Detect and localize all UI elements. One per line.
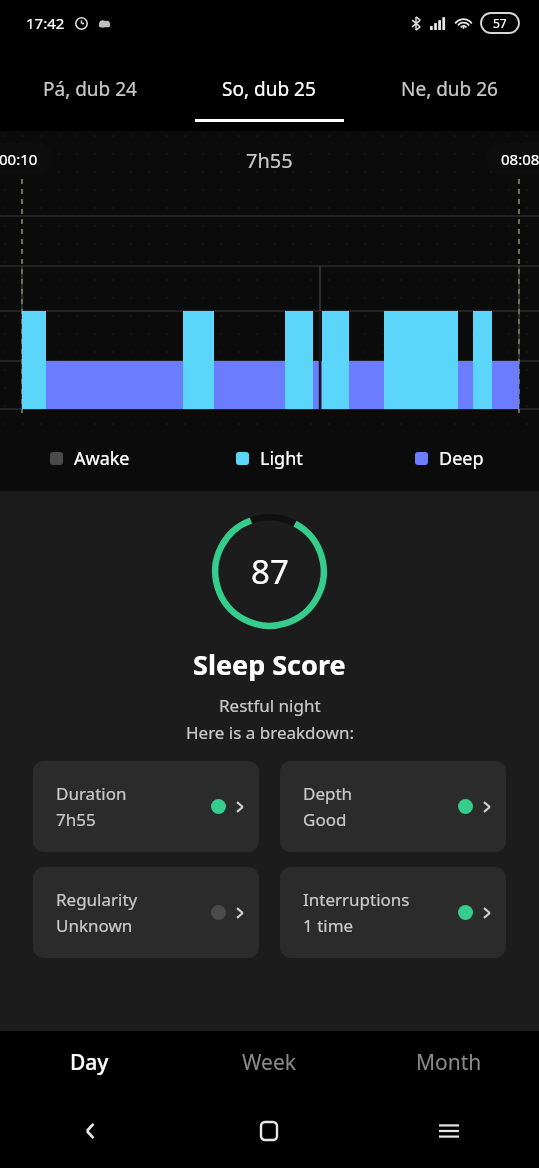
staticText: Deep: [439, 446, 484, 471]
staticText: So, dub 25: [222, 76, 316, 102]
staticText: Restful night: [219, 694, 321, 717]
staticText: Good: [303, 808, 347, 831]
staticText: Day: [70, 1048, 109, 1077]
staticText: Here is a breakdown:: [186, 721, 354, 744]
staticText: Regularity: [56, 888, 138, 911]
button[interactable]: Back: [0, 1094, 179, 1168]
staticText: 87: [251, 549, 289, 594]
button[interactable]: Day: [0, 1031, 179, 1094]
button[interactable]: Month: [359, 1031, 539, 1094]
staticText: 1 time: [303, 914, 354, 937]
button[interactable]: So, dub 25: [179, 46, 359, 131]
staticText: 00:10: [0, 149, 38, 169]
button[interactable]: Duration: [33, 761, 259, 852]
button[interactable]: Week: [179, 1031, 359, 1094]
button[interactable]: Regularity: [33, 867, 259, 958]
staticText: Duration: [56, 782, 127, 805]
staticText: 7h55: [246, 147, 293, 174]
staticText: Pá, dub 24: [43, 76, 137, 102]
button[interactable]: Recent apps: [359, 1094, 539, 1168]
staticText: Sleep Score: [193, 646, 346, 683]
staticText: 17:42: [26, 13, 65, 33]
staticText: Week: [242, 1048, 297, 1077]
staticText: Interruptions: [303, 888, 410, 911]
button[interactable]: Depth: [280, 761, 506, 852]
staticText: Awake: [74, 446, 130, 471]
staticText: Ne, dub 26: [401, 76, 498, 102]
button[interactable]: Ne, dub 26: [359, 46, 539, 131]
button[interactable]: Pá, dub 24: [0, 46, 179, 131]
staticText: 7h55: [56, 808, 96, 831]
staticText: Month: [416, 1048, 482, 1077]
button[interactable]: Home: [179, 1094, 359, 1168]
staticText: Unknown: [56, 914, 133, 937]
staticText: Light: [260, 446, 303, 471]
staticText: 08:08: [501, 149, 539, 169]
staticText: 57: [493, 15, 507, 31]
button[interactable]: Interruptions: [280, 867, 506, 958]
staticText: Depth: [303, 782, 353, 805]
